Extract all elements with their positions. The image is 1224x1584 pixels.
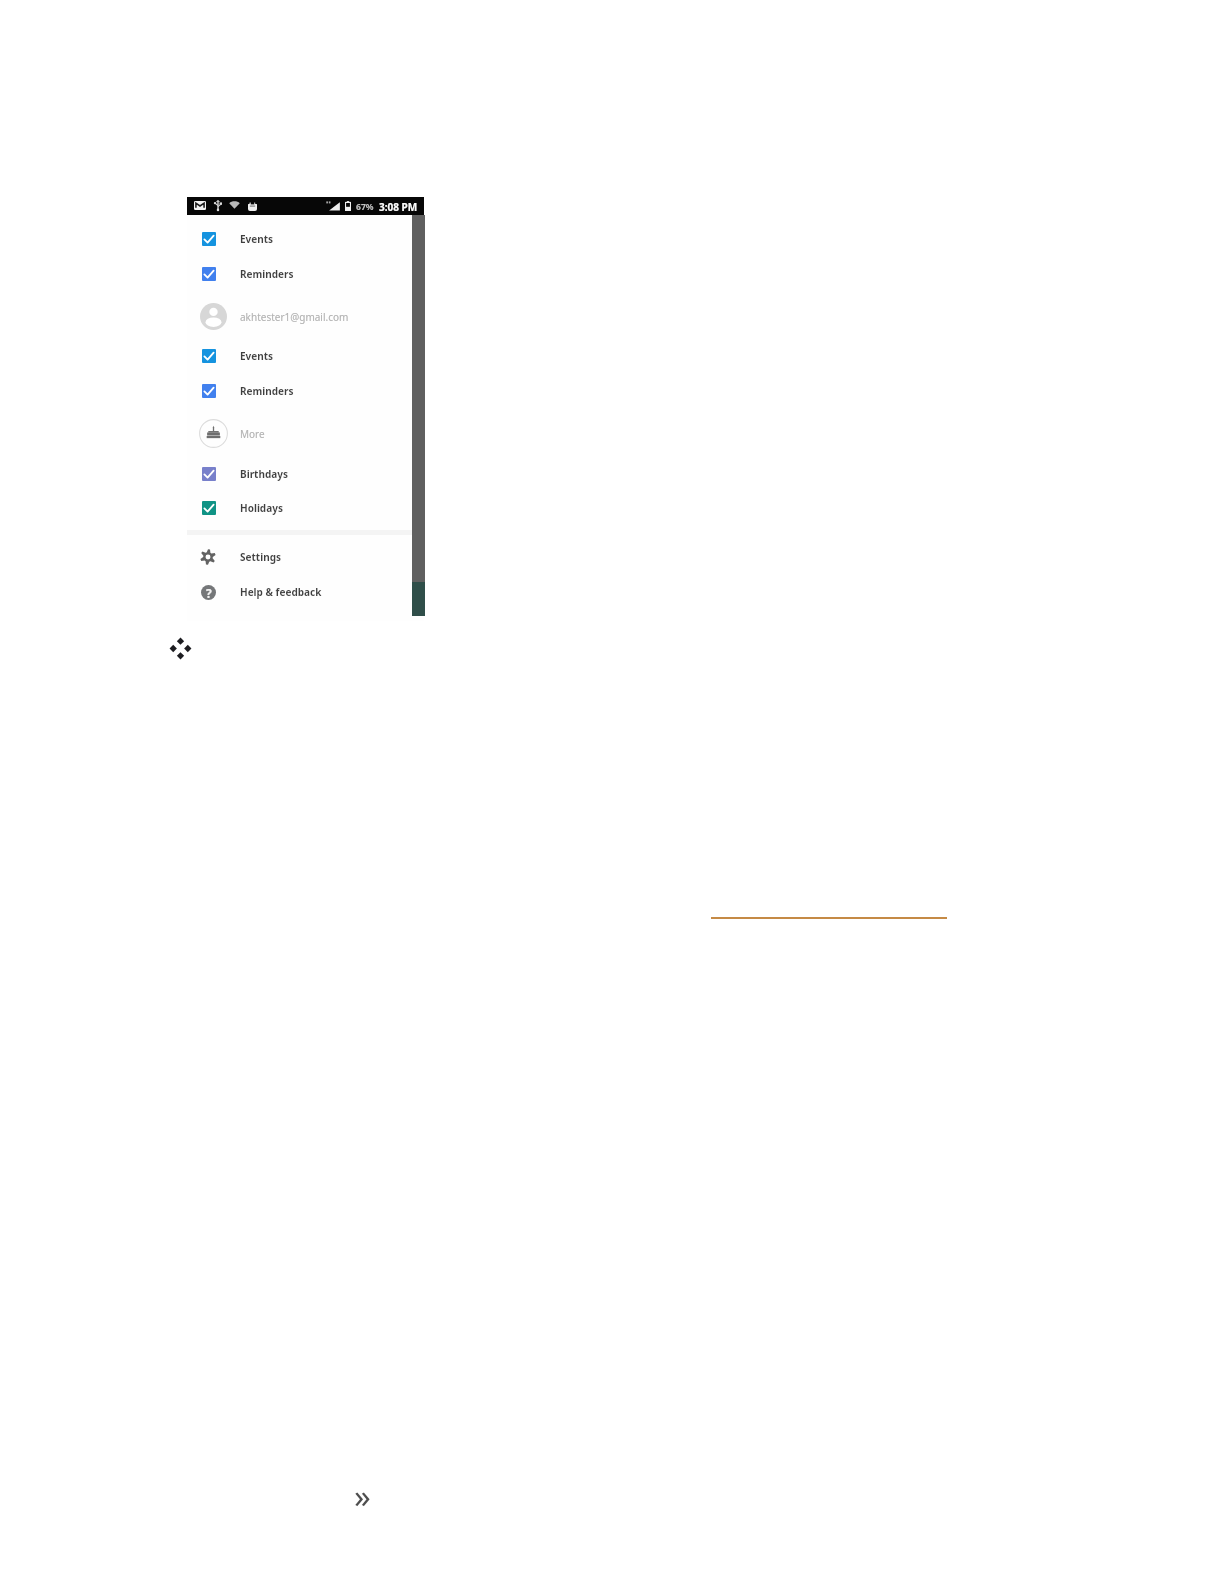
other: Settings xyxy=(200,549,216,565)
button[interactable]: Events xyxy=(187,222,412,256)
button[interactable]: Reminders xyxy=(187,257,412,291)
staticText: » xyxy=(354,1473,371,1518)
button[interactable]: Events xyxy=(187,339,412,373)
button[interactable]: Settings xyxy=(187,540,412,574)
staticText: Settings xyxy=(240,550,281,564)
staticText: More xyxy=(240,427,265,441)
other: Help and feedback xyxy=(201,585,216,600)
staticText: Holidays xyxy=(240,501,283,515)
button[interactable]: Reminders xyxy=(187,374,412,408)
button[interactable]: akhtester1@gmail.com xyxy=(187,300,412,334)
staticText: Birthdays xyxy=(240,467,288,481)
staticText: Events xyxy=(240,349,274,363)
button[interactable]: Help and feedback xyxy=(187,575,412,609)
staticText: 3:08 PM xyxy=(379,200,418,214)
staticText: Reminders xyxy=(240,267,294,281)
staticText: Help & feedback xyxy=(240,585,322,599)
staticText: akhtester1@gmail.com xyxy=(240,310,349,324)
button[interactable]: More xyxy=(187,417,412,451)
staticText: Reminders xyxy=(240,384,294,398)
button[interactable]: Holidays xyxy=(187,491,412,525)
staticText: ? xyxy=(206,585,212,600)
staticText: 67% xyxy=(356,201,374,213)
staticText: Events xyxy=(240,232,274,246)
button[interactable]: Birthdays xyxy=(187,457,412,491)
